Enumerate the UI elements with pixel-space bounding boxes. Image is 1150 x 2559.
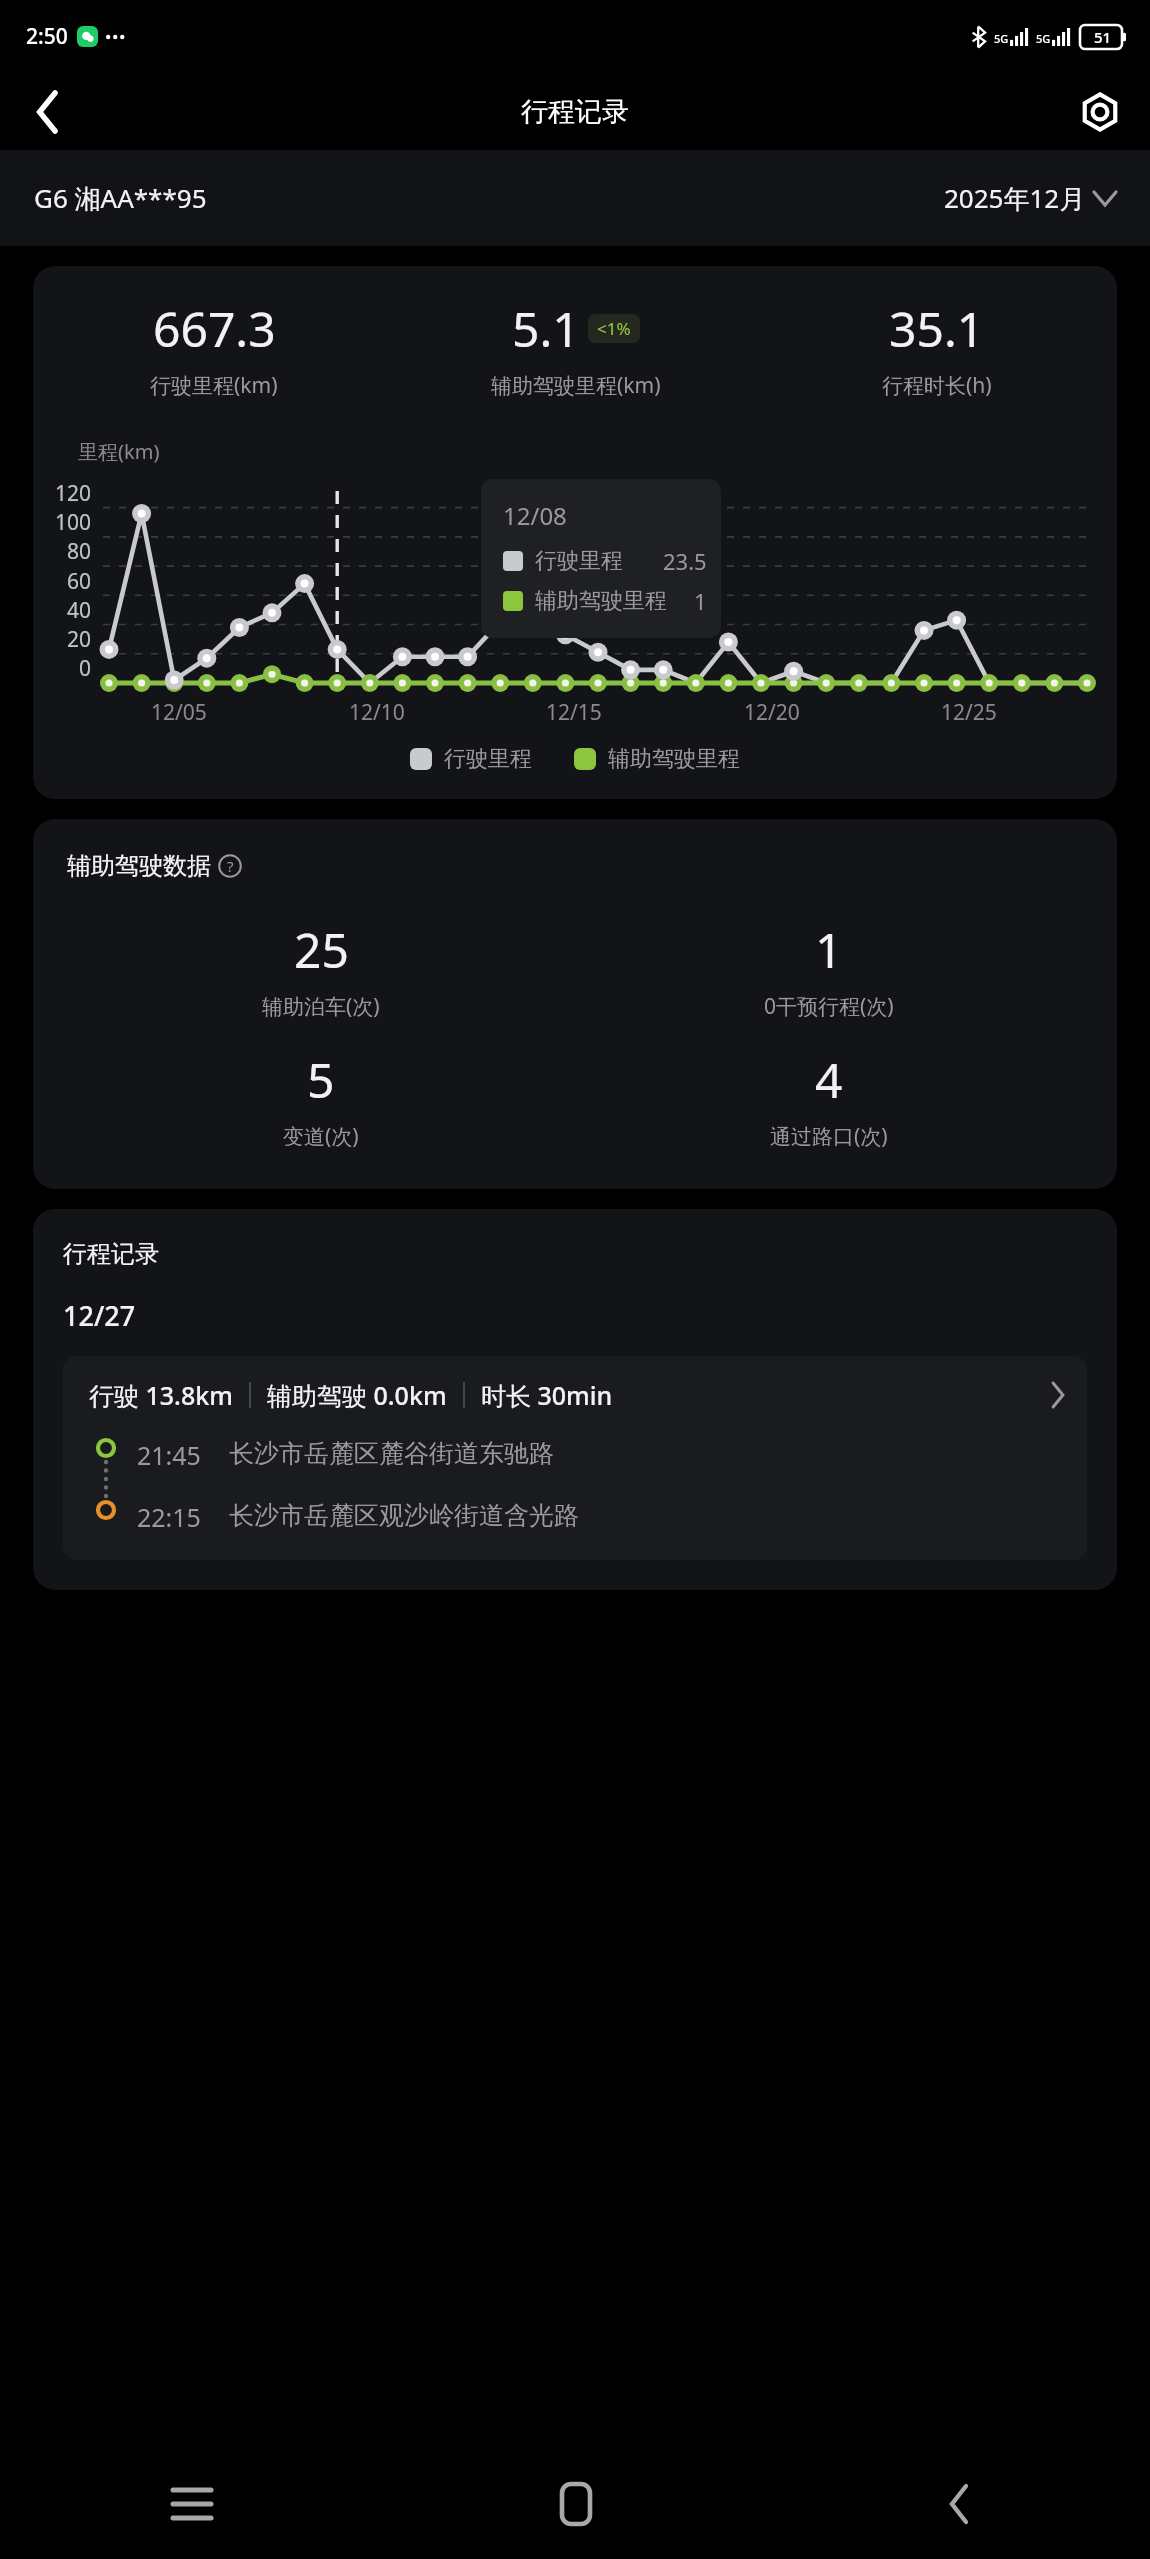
staticText: 辅助泊车(次) [262,992,380,1021]
staticText: 5G [1036,31,1051,46]
staticText: 80 [66,537,91,566]
staticText: 20 [66,625,91,654]
staticText: 1 [815,917,843,982]
staticText: 4 [815,1047,843,1112]
staticText: 60 [66,567,91,596]
staticText: 行程记录 [521,95,629,129]
staticText: 35.1 [889,296,985,361]
staticText: 5 [307,1047,335,1112]
button[interactable]: Back [767,2449,1150,2559]
staticText: 行驶里程 [535,547,623,575]
staticText: 行程时长(h) [882,371,992,400]
staticText: 长沙市岳麓区麓谷街道东驰路 [229,1438,554,1469]
staticText: 12/27 [63,1297,136,1334]
staticText: 1 [694,586,707,616]
staticText: <1% [597,317,631,340]
staticText: 5.1 [512,296,580,361]
staticText: 100 [54,508,91,537]
staticText: 0干预行程(次) [764,992,894,1021]
button[interactable]: Back [18,82,78,142]
staticText: 行驶里程(km) [150,371,278,400]
staticText: G6 湘AA***95 [34,180,207,216]
staticText: 667.3 [153,296,276,361]
staticText: 5G [994,31,1009,46]
staticText: 变道(次) [283,1122,359,1151]
staticText: 辅助驾驶数据 [67,851,211,881]
staticText: 辅助驾驶 0.0km [267,1378,447,1412]
staticText: 辅助驾驶里程 [535,587,667,615]
staticText: 行驶 13.8km [89,1378,233,1412]
button[interactable]: 2025年12月 [944,180,1116,216]
button[interactable]: 行驶 13.8km [63,1356,1087,1560]
staticText: 行程记录 [63,1239,159,1269]
staticText: 12/08 [503,499,567,532]
staticText: 长沙市岳麓区观沙岭街道含光路 [229,1500,579,1531]
staticText: 通过路口(次) [770,1122,888,1151]
staticText: 辅助驾驶里程 [608,745,740,773]
button[interactable]: Info [217,853,243,879]
staticText: 辅助驾驶里程(km) [491,371,661,400]
staticText: 23.5 [663,546,707,576]
button[interactable]: Home [384,2449,767,2559]
staticText: 21:45 [137,1438,201,1472]
staticText: 2025年12月 [944,180,1086,216]
staticText: 时长 30min [481,1378,613,1412]
staticText: 2:50 [26,22,68,51]
staticText: 12/25 [941,698,997,727]
staticText: 0 [78,654,91,683]
staticText: ? [227,856,234,876]
staticText: 12/15 [546,698,602,727]
staticText: 22:15 [137,1500,201,1534]
staticText: 51 [1094,27,1112,47]
staticText: 12/20 [744,698,800,727]
staticText: 120 [54,479,91,508]
staticText: 12/05 [151,698,207,727]
staticText: 12/10 [349,698,405,727]
button[interactable]: Recent apps [0,2449,384,2559]
staticText: 行驶里程 [444,745,532,773]
button[interactable]: Settings [1070,82,1130,142]
staticText: 40 [66,596,91,625]
staticText: 25 [294,917,349,982]
staticText: 里程(km) [78,438,160,465]
